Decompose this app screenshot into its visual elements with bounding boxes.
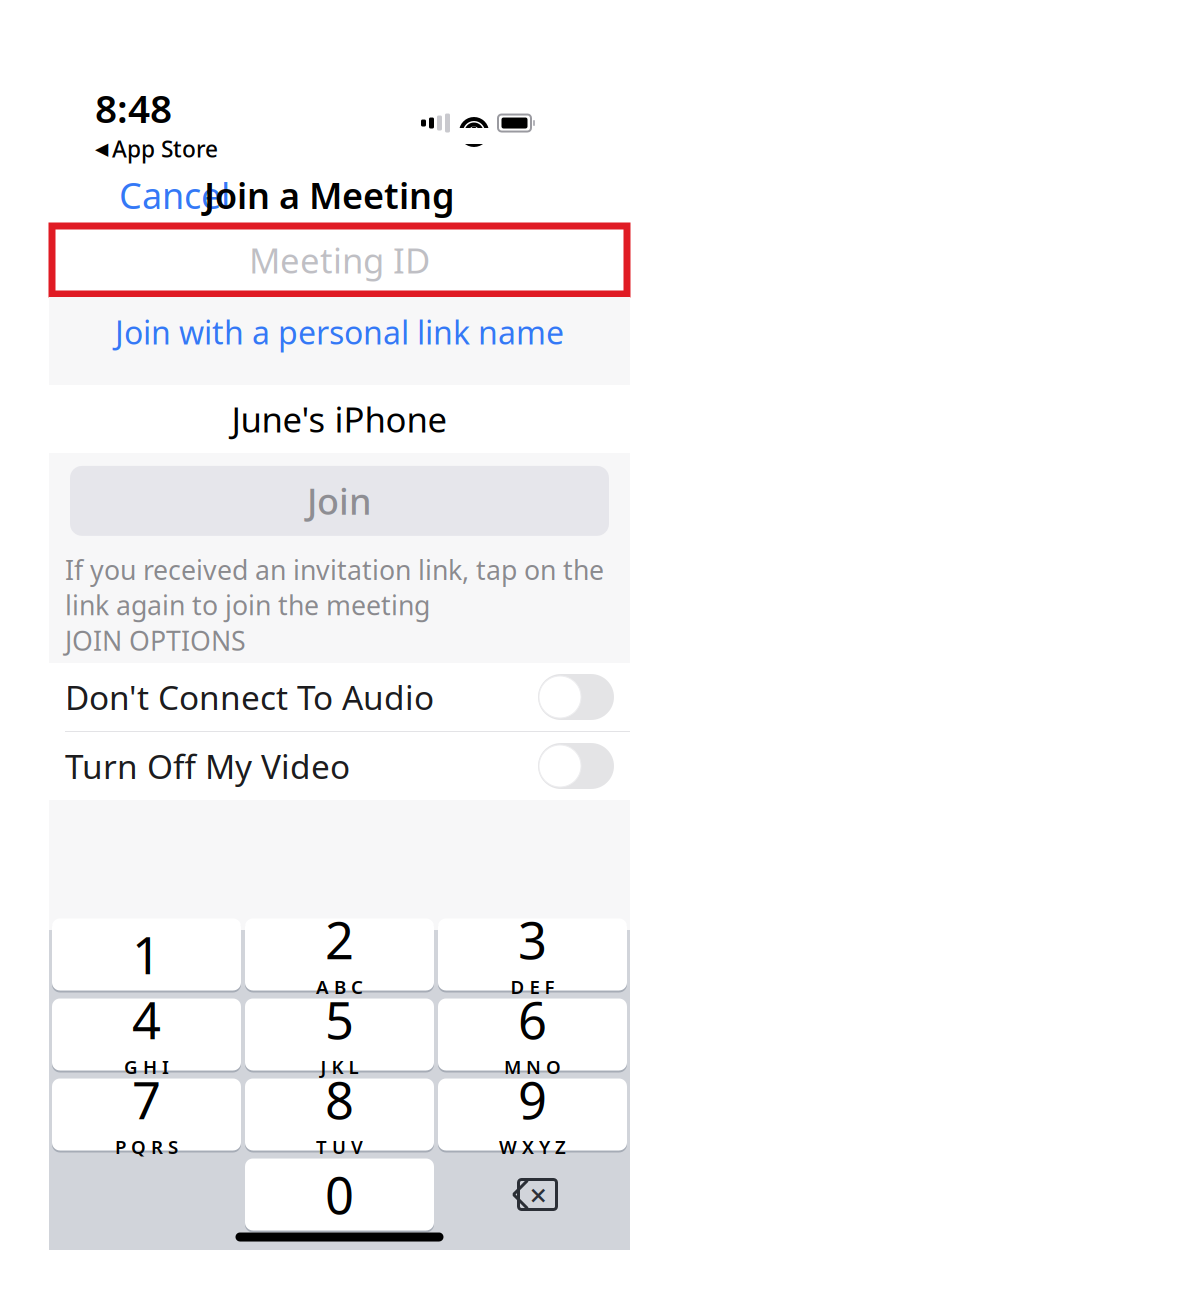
button[interactable]: 7: [52, 1076, 241, 1152]
staticText: M N O: [504, 1054, 561, 1079]
staticText: P Q R S: [115, 1134, 178, 1159]
staticText: 9: [518, 1066, 547, 1133]
button[interactable]: 9: [438, 1076, 627, 1152]
staticText: W X Y Z: [499, 1134, 566, 1159]
button[interactable]: 2: [245, 916, 434, 992]
button[interactable]: Join with a personal link name: [49, 297, 630, 367]
button[interactable]: 4: [52, 996, 241, 1072]
staticText: Join: [307, 477, 372, 525]
staticText: 1: [132, 921, 161, 988]
staticText: T U V: [316, 1134, 363, 1159]
staticText: Cancel: [119, 171, 230, 219]
staticText: Don't Connect To Audio: [65, 675, 434, 719]
staticText: Join with a personal link name: [115, 311, 564, 353]
button[interactable]: 5: [245, 996, 434, 1072]
staticText: Join a Meeting: [204, 171, 455, 219]
staticText: App Store: [112, 134, 218, 164]
staticText: Turn Off My Video: [65, 744, 350, 788]
staticText: ×: [529, 1174, 547, 1215]
button[interactable]: 1: [52, 916, 241, 992]
staticText: J K L: [320, 1054, 358, 1079]
staticText: 3: [518, 906, 547, 973]
staticText: ◀: [95, 139, 108, 158]
button[interactable]: Cancel: [111, 165, 238, 225]
button[interactable]: 6: [438, 996, 627, 1072]
staticText: Meeting ID: [249, 237, 430, 283]
staticText: JOIN OPTIONS: [65, 623, 246, 658]
staticText: G H I: [124, 1054, 169, 1079]
button[interactable]: Don't Connect To Audio: [49, 663, 630, 731]
button[interactable]: 8: [245, 1076, 434, 1152]
staticText: 2: [325, 906, 354, 973]
button[interactable]: 3: [438, 916, 627, 992]
staticText: D E F: [510, 974, 554, 999]
staticText: 5: [325, 986, 354, 1053]
staticText: If you received an invitation link, tap …: [65, 552, 604, 623]
staticText: A B C: [316, 974, 363, 999]
button[interactable]: Delete: [438, 1156, 627, 1232]
staticText: 0: [325, 1161, 354, 1228]
staticText: 6: [518, 986, 547, 1053]
staticText: 8: [325, 1066, 354, 1133]
staticText: 4: [132, 986, 161, 1053]
button[interactable]: 0: [245, 1156, 434, 1232]
staticText: 8:48: [95, 82, 172, 134]
button[interactable]: Turn Off My Video: [49, 732, 630, 800]
button[interactable]: Join: [70, 466, 609, 536]
staticText: June's iPhone: [231, 396, 447, 442]
staticText: 7: [132, 1066, 161, 1133]
